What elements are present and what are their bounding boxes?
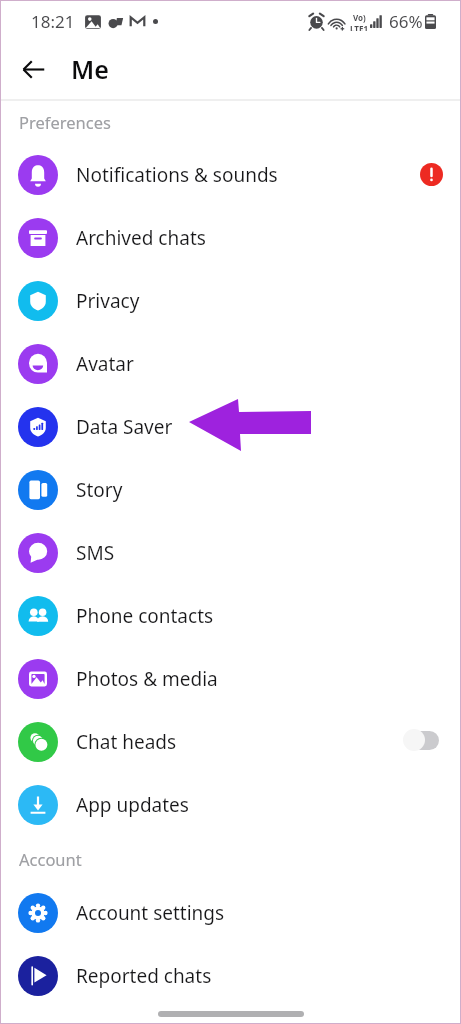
button[interactable]: Data Saver — [0, 395, 461, 458]
staticText: SMS — [76, 540, 115, 566]
staticText: Account — [19, 848, 82, 870]
staticText: Story — [76, 477, 123, 503]
button[interactable]: Avatar — [0, 332, 461, 395]
button[interactable]: Photos & media — [0, 647, 461, 710]
staticText: 66% — [389, 10, 423, 33]
staticText: Vo) — [353, 12, 366, 23]
staticText: Data Saver — [76, 414, 173, 440]
button[interactable]: Reported chats — [0, 944, 461, 1007]
button[interactable]: Notifications & sounds — [0, 143, 461, 206]
button[interactable]: Phone contacts — [0, 584, 461, 647]
staticText: Account settings — [76, 900, 225, 926]
button[interactable]: App updates — [0, 773, 461, 836]
button[interactable]: SMS — [0, 521, 461, 584]
staticText: Chat heads — [76, 729, 177, 755]
button[interactable]: Chat heads — [0, 710, 461, 773]
staticText: Phone contacts — [76, 603, 214, 629]
staticText: Notifications & sounds — [76, 162, 278, 188]
button[interactable]: Back — [11, 47, 55, 91]
staticText: Archived chats — [76, 225, 206, 251]
button[interactable]: Story — [0, 458, 461, 521]
staticText: Photos & media — [76, 666, 218, 692]
button[interactable]: Privacy — [0, 269, 461, 332]
staticText: 18:21 — [31, 10, 75, 33]
staticText: LTE1 — [350, 23, 368, 31]
staticText: Reported chats — [76, 963, 212, 989]
staticText: Privacy — [76, 288, 140, 314]
staticText: Preferences — [19, 111, 111, 133]
button[interactable]: Toggle chat heads — [403, 727, 439, 753]
staticText: Me — [71, 52, 109, 86]
staticText: App updates — [76, 792, 189, 818]
button[interactable]: Archived chats — [0, 206, 461, 269]
button[interactable]: Account settings — [0, 881, 461, 944]
staticText: Avatar — [76, 351, 134, 377]
